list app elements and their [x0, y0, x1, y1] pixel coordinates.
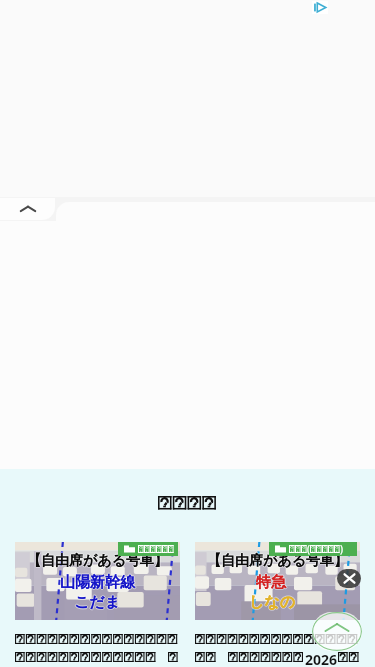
- staticText: 山陽新幹線: [59, 573, 134, 592]
- staticText: 【自由席がある号車】: [206, 552, 347, 570]
- staticText: しなの: [249, 593, 296, 612]
- staticText: しなの: [248, 593, 295, 612]
- staticText: こだま: [75, 593, 122, 612]
- staticText: こだま: [74, 592, 121, 611]
- staticText: 特急: [256, 574, 286, 593]
- staticText: 山陽新幹線: [60, 574, 135, 593]
- staticText: 特急: [255, 573, 285, 592]
- staticText: こだま: [74, 593, 121, 612]
- staticText: しなの: [249, 592, 296, 611]
- staticText: こだま: [74, 594, 121, 613]
- staticText: 2026: [305, 650, 338, 667]
- staticText: しなの: [250, 593, 297, 612]
- staticText: 【自由席がある号車】: [27, 552, 168, 570]
- button[interactable]: Close: [337, 569, 361, 588]
- staticText: 山陽新幹線: [60, 572, 135, 591]
- staticText: 【自由席がある号車】: [207, 551, 348, 569]
- staticText: 【自由席がある号車】: [207, 552, 348, 570]
- staticText: 【自由席がある号車】: [27, 551, 168, 569]
- staticText: 山陽新幹線: [60, 573, 135, 592]
- staticText: 【自由席がある号車】: [207, 552, 348, 570]
- staticText: しなの: [249, 593, 296, 612]
- staticText: 【自由席がある号車】: [207, 553, 348, 571]
- staticText: 【自由席がある号車】: [27, 553, 168, 571]
- staticText: 特急: [256, 573, 286, 592]
- staticText: ): [340, 542, 343, 556]
- staticText: 【自由席がある号車】: [28, 552, 169, 570]
- button[interactable]: 【自由席がある号車】: [15, 542, 180, 620]
- staticText: 特急: [257, 573, 287, 592]
- staticText: こだま: [73, 593, 120, 612]
- staticText: 山陽新幹線: [60, 573, 135, 592]
- staticText: 【自由席がある号車】: [208, 552, 349, 570]
- staticText: 特急: [256, 573, 286, 592]
- button[interactable]: Scroll to top: [312, 612, 362, 651]
- staticText: 【自由席がある号車】: [27, 552, 168, 570]
- button[interactable]: 【自由席がある号車】: [195, 542, 360, 620]
- button[interactable]: Collapse advertisement: [0, 198, 55, 220]
- staticText: しなの: [249, 594, 296, 613]
- staticText: こだま: [74, 593, 121, 612]
- staticText: 【自由席がある号車】: [26, 552, 167, 570]
- staticText: (: [307, 542, 310, 556]
- staticText: 特急: [256, 572, 286, 591]
- staticText: 山陽新幹線: [61, 573, 136, 592]
